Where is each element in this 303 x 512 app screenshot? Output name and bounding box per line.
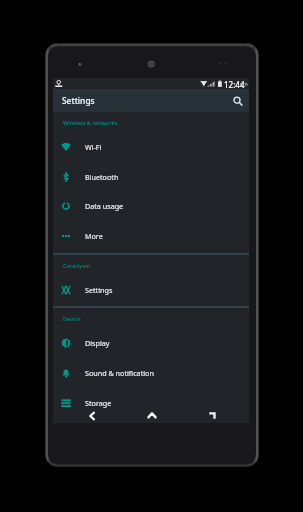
staticText: Bluetooth: [85, 172, 119, 182]
button[interactable]: Bluetooth: [53, 162, 249, 192]
staticText: pm: [240, 81, 248, 88]
staticText: Settings: [85, 285, 113, 295]
staticText: Sound & notification: [85, 368, 154, 378]
button[interactable]: Wi-Fi: [53, 132, 249, 162]
button[interactable]: Sound & notification: [53, 358, 249, 388]
staticText: Storage: [85, 398, 112, 408]
staticText: Cataclysm: [63, 262, 91, 270]
button[interactable]: Settings: [53, 275, 249, 305]
button[interactable]: Storage: [53, 388, 249, 418]
button[interactable]: Data usage: [53, 191, 249, 221]
button[interactable]: Recent apps: [199, 408, 225, 423]
staticText: Settings: [62, 95, 95, 106]
staticText: Display: [85, 338, 110, 348]
staticText: Device: [63, 315, 81, 323]
button[interactable]: Back: [79, 408, 105, 423]
staticText: More: [85, 231, 103, 241]
button[interactable]: More: [53, 221, 249, 251]
button[interactable]: Display: [53, 328, 249, 358]
button[interactable]: Search: [227, 89, 249, 112]
staticText: 12:44: [224, 79, 245, 90]
staticText: Data usage: [85, 201, 124, 211]
staticText: Wireless & networks: [63, 119, 118, 127]
button[interactable]: Home: [139, 408, 165, 423]
staticText: Wi-Fi: [85, 142, 102, 152]
